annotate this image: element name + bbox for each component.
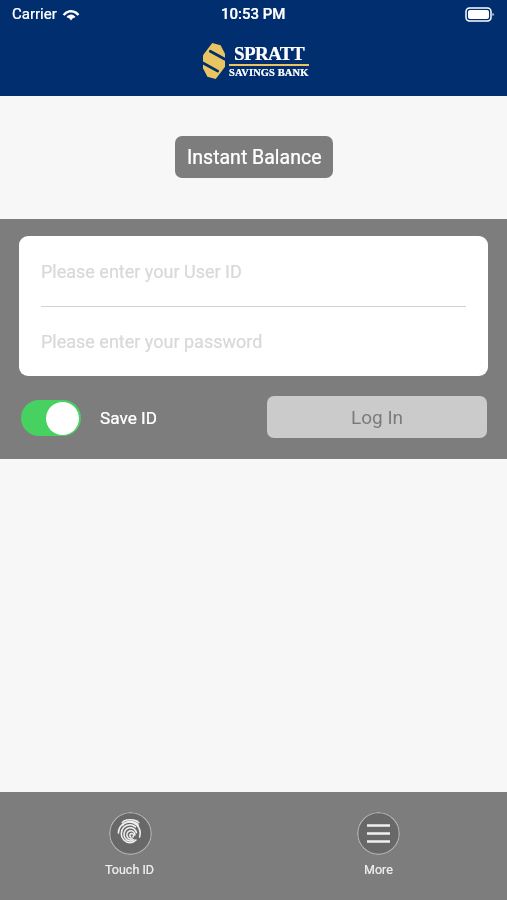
button[interactable]: Please enter your User ID	[19, 236, 488, 306]
staticText: Save ID	[100, 408, 157, 428]
staticText: Please enter your User ID	[41, 261, 242, 282]
staticText: Log In	[351, 406, 404, 428]
staticText: Please enter your password	[41, 331, 263, 352]
button[interactable]: Save ID	[21, 400, 157, 436]
other: More	[357, 812, 400, 855]
other: Touch ID	[109, 812, 152, 855]
staticText: 10:53 PM	[221, 5, 286, 23]
staticText: Instant Balance	[187, 146, 322, 169]
button[interactable]: Instant Balance	[175, 136, 333, 178]
staticText: SAVINGS BANK	[229, 67, 309, 79]
staticText: Touch ID	[105, 862, 155, 877]
button[interactable]: More	[357, 812, 400, 877]
button[interactable]: Please enter your password	[19, 307, 488, 376]
staticText: SPRATT	[234, 43, 304, 64]
button[interactable]: Log In	[267, 396, 487, 438]
staticText: Carrier	[12, 5, 57, 23]
staticText: More	[364, 862, 393, 877]
button[interactable]: Touch ID	[105, 812, 155, 877]
